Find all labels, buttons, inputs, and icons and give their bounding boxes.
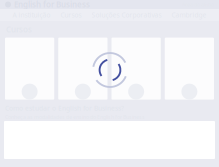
button[interactable] xyxy=(111,38,161,100)
staticText: English for Business xyxy=(14,0,90,10)
button[interactable] xyxy=(165,38,214,100)
button[interactable] xyxy=(5,38,54,100)
button[interactable] xyxy=(58,38,107,100)
